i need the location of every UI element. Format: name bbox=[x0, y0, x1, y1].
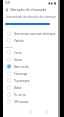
staticText: Curto bbox=[14, 51, 22, 55]
button[interactable]: Back bbox=[12, 108, 19, 115]
button[interactable]: Off sonoro bbox=[3, 98, 58, 105]
staticText: Balão bbox=[14, 86, 22, 90]
staticText: Tic-tic-tic bbox=[14, 93, 26, 97]
staticText: Suave bbox=[14, 58, 23, 62]
staticText: Tiquetaque bbox=[14, 79, 30, 83]
button[interactable]: Back bbox=[3, 6, 10, 13]
staticText: 9:41 bbox=[5, 1, 11, 5]
button[interactable]: Curto bbox=[3, 49, 58, 56]
button[interactable]: Recents bbox=[43, 108, 50, 115]
staticText: Intensidade da vibração de chamada bbox=[6, 15, 57, 19]
button[interactable]: Vibration intensity bbox=[3, 21, 58, 27]
staticText: Sincronizar com som do toque bbox=[14, 32, 56, 36]
button[interactable]: Padrão bbox=[3, 37, 58, 44]
staticText: Off sonoro bbox=[14, 100, 29, 104]
staticText: Bem-vindo bbox=[14, 65, 29, 69]
button[interactable]: Home bbox=[27, 108, 34, 115]
button[interactable]: Sincronizar com som do toque bbox=[3, 30, 58, 37]
button[interactable]: Tic-tic-tic bbox=[3, 91, 58, 98]
staticText: Tartaruga bbox=[14, 72, 28, 76]
staticText: Outros bbox=[5, 45, 13, 48]
staticText: Padrão bbox=[14, 39, 24, 43]
button[interactable]: Tiquetaque bbox=[3, 77, 58, 84]
button[interactable]: Suave bbox=[3, 56, 58, 63]
button[interactable]: Tartaruga bbox=[3, 70, 58, 77]
staticText: Vibração de chamada bbox=[10, 7, 47, 12]
button[interactable]: Balão bbox=[3, 84, 58, 91]
button[interactable]: Bem-vindo bbox=[3, 63, 58, 70]
